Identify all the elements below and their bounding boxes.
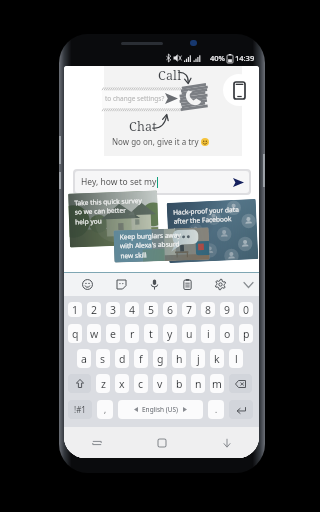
staticText: r — [130, 327, 135, 341]
staticText: to change settings? — [105, 94, 165, 103]
button[interactable]: Open phone app — [223, 74, 255, 106]
staticText: v — [157, 377, 163, 391]
button[interactable]: 9 — [220, 302, 234, 317]
button[interactable]: Backspace — [229, 374, 252, 393]
button[interactable]: Keyboard settings — [204, 273, 237, 296]
button[interactable]: 3 — [106, 302, 120, 317]
staticText: p — [243, 327, 250, 341]
staticText: a — [81, 352, 87, 366]
staticText: 1 — [72, 303, 79, 317]
staticText: l — [235, 352, 238, 366]
staticText: English (US) — [142, 405, 179, 414]
button[interactable]: e — [106, 324, 120, 343]
staticText: q — [72, 327, 79, 341]
staticText: m — [212, 377, 222, 391]
button[interactable]: i — [201, 324, 215, 343]
button[interactable]: , — [97, 400, 113, 419]
button[interactable]: Stickers — [104, 273, 138, 296]
button[interactable]: 6 — [163, 302, 177, 317]
button[interactable]: a — [77, 349, 91, 368]
button[interactable]: Collapse keyboard — [237, 273, 259, 296]
staticText: !#1 — [74, 404, 86, 415]
staticText: 2 — [91, 303, 98, 317]
staticText: b — [176, 377, 183, 391]
staticText: w — [90, 327, 99, 341]
staticText: 4 — [129, 303, 136, 317]
button[interactable]: g — [153, 349, 167, 368]
button[interactable]: 2 — [87, 302, 101, 317]
staticText: 0 — [243, 303, 250, 317]
button[interactable]: z — [96, 374, 110, 393]
staticText: 7 — [186, 303, 193, 317]
button[interactable]: Voice input — [138, 273, 171, 296]
staticText: 40% — [210, 53, 225, 63]
button[interactable]: v — [153, 374, 167, 393]
staticText: x — [119, 377, 125, 391]
staticText: 9 — [224, 303, 231, 317]
button[interactable]: Hide keyboard — [194, 427, 259, 458]
staticText: n — [195, 377, 202, 391]
staticText: , — [104, 404, 107, 415]
staticText: z — [101, 377, 106, 391]
staticText: g — [157, 352, 164, 366]
button[interactable]: b — [172, 374, 186, 393]
button[interactable]: w — [87, 324, 101, 343]
button[interactable]: k — [210, 349, 224, 368]
staticText: c — [138, 377, 144, 391]
staticText: e — [110, 327, 116, 341]
staticText: Now go on, give it a try — [112, 136, 201, 147]
button[interactable]: 5 — [144, 302, 158, 317]
staticText: 8 — [205, 303, 212, 317]
button[interactable]: c — [134, 374, 148, 393]
button[interactable]: Clipboard — [171, 273, 204, 296]
staticText: Hack-proof your data after the Facebook … — [173, 205, 240, 236]
button[interactable]: !#1 — [68, 400, 92, 419]
button[interactable]: j — [191, 349, 205, 368]
button[interactable]: s — [96, 349, 110, 368]
staticText: k — [214, 352, 220, 366]
staticText: j — [197, 352, 200, 366]
button[interactable]: p — [239, 324, 253, 343]
button[interactable]: o — [220, 324, 234, 343]
button[interactable]: t — [144, 324, 158, 343]
button[interactable]: r — [125, 324, 139, 343]
button[interactable]: d — [115, 349, 129, 368]
staticText: Keep burglars away with Alexa's absurd n… — [120, 230, 182, 260]
button[interactable]: 8 — [201, 302, 215, 317]
staticText: s — [100, 352, 106, 366]
button[interactable]: m — [210, 374, 224, 393]
button[interactable]: 1 — [68, 302, 82, 317]
button[interactable]: h — [172, 349, 186, 368]
staticText: 14:39 — [235, 53, 255, 63]
staticText: Take this quick survey so we can better … — [74, 196, 143, 226]
button[interactable]: 7 — [182, 302, 196, 317]
button[interactable]: Hey, how to set my — [75, 171, 249, 193]
staticText: Call — [158, 67, 182, 84]
button[interactable]: Enter — [229, 400, 253, 419]
button[interactable]: Shift — [68, 374, 91, 393]
button[interactable]: Recent apps — [64, 427, 129, 458]
button[interactable]: Space, English (US) — [118, 400, 203, 419]
staticText: 5 — [148, 303, 155, 317]
button[interactable]: 0 — [239, 302, 253, 317]
button[interactable]: l — [229, 349, 243, 368]
button[interactable]: Emoji — [70, 273, 104, 296]
staticText: t — [149, 327, 153, 341]
staticText: Hey, how to set my — [81, 176, 157, 188]
button[interactable]: Home — [129, 427, 194, 458]
staticText: o — [224, 327, 231, 341]
button[interactable]: u — [182, 324, 196, 343]
button[interactable]: 4 — [125, 302, 139, 317]
button[interactable]: y — [163, 324, 177, 343]
button[interactable]: . — [208, 400, 224, 419]
button[interactable]: Keep burglars away with Alexa's absurd n… — [113, 227, 209, 262]
button[interactable]: n — [191, 374, 205, 393]
button[interactable]: x — [115, 374, 129, 393]
other: Send — [233, 178, 244, 187]
button[interactable]: q — [68, 324, 82, 343]
button[interactable]: f — [134, 349, 148, 368]
staticText: u — [186, 327, 193, 341]
button[interactable]: Take this quick survey so we can better … — [68, 190, 159, 248]
staticText: f — [139, 352, 143, 366]
button[interactable]: Hack-proof your data after the Facebook … — [167, 199, 258, 263]
